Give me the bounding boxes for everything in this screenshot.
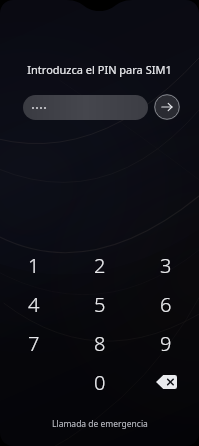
button[interactable]: 6	[133, 290, 199, 318]
button[interactable]: 2	[67, 251, 133, 279]
staticText: Llamada de emergencia	[52, 418, 148, 430]
staticText: 5	[94, 291, 106, 318]
staticText: 7	[28, 330, 40, 357]
button[interactable]: Llamada de emergencia	[42, 415, 158, 433]
staticText: 4	[28, 291, 40, 318]
button[interactable]: 9	[133, 329, 199, 357]
button[interactable]	[23, 95, 148, 120]
button[interactable]: 4	[0, 290, 67, 318]
staticText: Introduzca el PIN para SIM1	[27, 62, 172, 77]
staticText: 6	[160, 291, 172, 318]
button[interactable]: 0	[67, 368, 133, 396]
staticText: 1	[28, 252, 40, 279]
button[interactable]: 5	[67, 290, 133, 318]
staticText: 8	[94, 330, 106, 357]
staticText: 3	[160, 252, 172, 279]
button[interactable]: 3	[133, 251, 199, 279]
staticText: 0	[94, 369, 106, 396]
button[interactable]: 8	[67, 329, 133, 357]
button[interactable]: 7	[0, 329, 67, 357]
button[interactable]: Backspace	[133, 368, 199, 396]
staticText: 9	[160, 330, 172, 357]
button[interactable]: Enter PIN	[154, 94, 180, 120]
staticText: 2	[94, 252, 106, 279]
button[interactable]: 1	[0, 251, 67, 279]
